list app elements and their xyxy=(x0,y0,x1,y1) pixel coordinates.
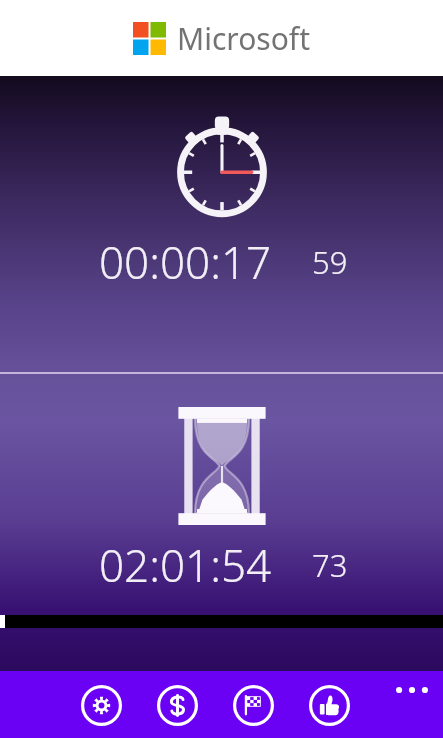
button[interactable]: Rate xyxy=(306,682,352,728)
button[interactable]: Race xyxy=(230,682,276,728)
staticText: 73 xyxy=(312,544,348,586)
button[interactable]: More options xyxy=(388,675,436,705)
button[interactable]: 00:00:17 xyxy=(0,76,443,372)
staticText: 02:01:54 xyxy=(99,535,272,595)
button[interactable]: Support xyxy=(154,682,200,728)
button[interactable]: Settings xyxy=(78,682,124,728)
staticText: Microsoft xyxy=(177,18,310,59)
button[interactable]: 02:01:54 xyxy=(0,374,443,615)
staticText: 00:00:17 xyxy=(99,232,272,292)
staticText: 59 xyxy=(312,241,348,283)
